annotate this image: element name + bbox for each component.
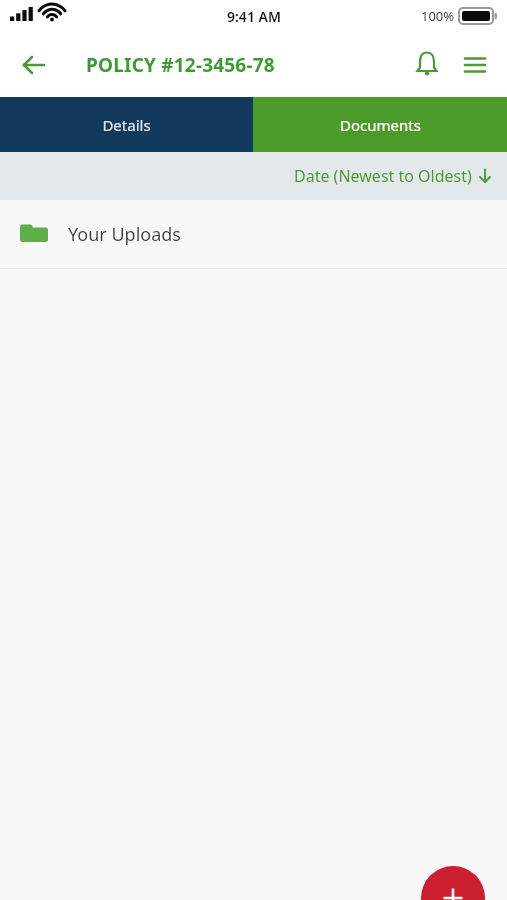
- staticText: Your Uploads: [68, 222, 181, 247]
- staticText: 100%: [421, 7, 455, 25]
- button[interactable]: Your Uploads: [0, 200, 507, 268]
- button[interactable]: Details: [0, 97, 253, 152]
- button[interactable]: Date (Newest to Oldest): [0, 152, 507, 200]
- staticText: POLICY #12-3456-78: [86, 52, 275, 78]
- button[interactable]: Documents: [253, 97, 507, 152]
- button[interactable]: Notifications: [403, 41, 451, 89]
- staticText: Details: [102, 115, 151, 135]
- staticText: Documents: [340, 115, 421, 135]
- button[interactable]: Back: [10, 41, 58, 89]
- button[interactable]: Menu: [451, 41, 499, 89]
- button[interactable]: Add document: [421, 866, 485, 900]
- staticText: 9:41 AM: [227, 7, 281, 26]
- staticText: Date (Newest to Oldest): [294, 165, 472, 187]
